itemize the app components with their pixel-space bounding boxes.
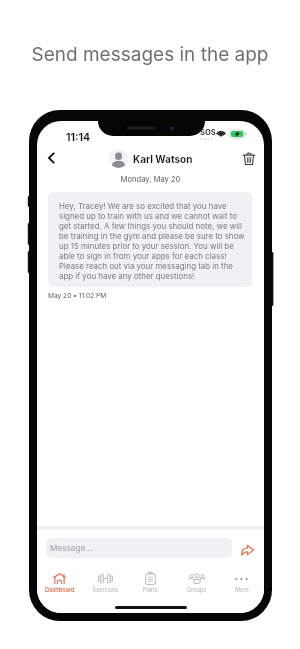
button[interactable]: Send message bbox=[239, 542, 256, 558]
staticText: Plans bbox=[143, 587, 158, 594]
staticText: Exercises bbox=[93, 587, 119, 594]
button[interactable]: Delete conversation bbox=[239, 148, 259, 168]
button[interactable]: Exercises bbox=[83, 571, 128, 594]
staticText: Message... bbox=[50, 543, 93, 553]
staticText: May 20 • 11:02 PM bbox=[48, 292, 107, 300]
staticText: Monday, May 20 bbox=[37, 175, 264, 184]
staticText: More bbox=[235, 587, 249, 594]
button[interactable]: More bbox=[219, 571, 264, 594]
button[interactable]: Back bbox=[40, 147, 62, 169]
button[interactable]: Groups bbox=[174, 571, 219, 594]
button[interactable]: Message... bbox=[46, 538, 232, 558]
staticText: Dashboard bbox=[45, 587, 75, 594]
staticText: Hey, Tracey! We are so excited that you … bbox=[59, 201, 248, 281]
staticText: Send messages in the app bbox=[0, 43, 300, 66]
staticText: 11:14 bbox=[66, 131, 91, 144]
button[interactable]: Plans bbox=[128, 571, 173, 594]
staticText: Karl Watson bbox=[133, 153, 193, 165]
staticText: SOS bbox=[200, 128, 216, 137]
button[interactable]: Dashboard bbox=[37, 571, 82, 594]
staticText: Groups bbox=[187, 587, 207, 594]
